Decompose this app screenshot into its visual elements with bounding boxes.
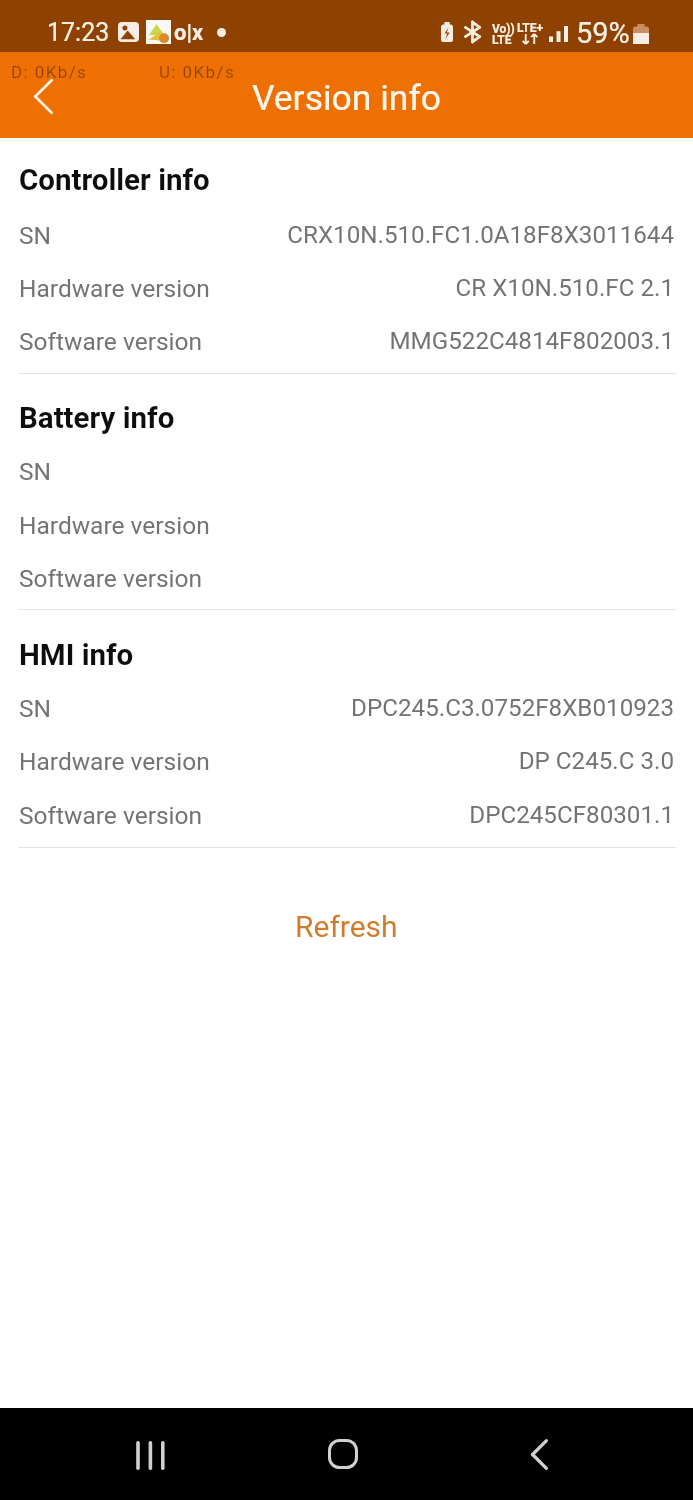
button[interactable]: Back	[0, 52, 86, 138]
staticText: LTE	[492, 33, 512, 47]
button[interactable]: Hardware version	[0, 274, 693, 303]
button[interactable]: Recent apps	[110, 1408, 190, 1500]
button[interactable]: Software version	[0, 564, 693, 593]
staticText: SN	[19, 457, 52, 486]
staticText: Refresh	[295, 909, 398, 944]
staticText: SN	[19, 221, 52, 250]
button[interactable]: Controller info	[19, 163, 210, 198]
staticText: SN	[19, 694, 52, 723]
button[interactable]: Refresh	[265, 897, 428, 956]
button[interactable]: SN	[0, 457, 693, 486]
staticText: HMI info	[19, 638, 134, 673]
button[interactable]: HMI info	[19, 638, 134, 673]
button[interactable]: Back	[498, 1408, 578, 1500]
staticText: D: 0Kb/s	[11, 62, 88, 82]
staticText: Controller info	[19, 163, 210, 198]
staticText: CRX10N.510.FC1.0A18F8X3011644	[287, 221, 674, 249]
button[interactable]: Hardware version	[0, 747, 693, 776]
button[interactable]: SN	[0, 221, 693, 250]
button[interactable]: Hardware version	[0, 511, 693, 540]
button[interactable]: Software version	[0, 327, 693, 356]
staticText: Hardware version	[19, 511, 210, 540]
button[interactable]: Battery info	[19, 401, 175, 436]
staticText: o|x	[174, 20, 204, 46]
button[interactable]: Software version	[0, 801, 693, 830]
staticText: Vo))	[492, 22, 515, 36]
staticText: Hardware version	[19, 274, 210, 303]
staticText: 59%	[576, 16, 630, 50]
staticText: DPC245.C3.0752F8XB010923	[351, 694, 674, 722]
staticText: 17:23	[47, 18, 110, 47]
staticText: Software version	[19, 564, 203, 593]
staticText: U: 0Kb/s	[159, 62, 236, 82]
staticText: DP C245.C 3.0	[518, 747, 674, 775]
staticText: Hardware version	[19, 747, 210, 776]
staticText: DPC245CF80301.1	[469, 801, 674, 829]
staticText: Software version	[19, 327, 203, 356]
staticText: Battery info	[19, 401, 175, 436]
staticText: LTE+	[517, 21, 544, 35]
button[interactable]: SN	[0, 694, 693, 723]
staticText: CR X10N.510.FC 2.1	[455, 274, 674, 302]
staticText: Software version	[19, 801, 203, 830]
staticText: Version info	[0, 77, 693, 119]
button[interactable]: Home	[303, 1408, 383, 1500]
staticText: MMG522C4814F802003.1	[389, 327, 674, 355]
